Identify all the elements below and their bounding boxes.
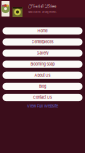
button[interactable]: Blog bbox=[2, 83, 82, 90]
staticText: Florals & Blooms bbox=[28, 4, 56, 9]
button[interactable]: Blooming Soap bbox=[2, 61, 82, 68]
staticText: View Full Website bbox=[27, 104, 58, 108]
button[interactable]: View Full Website bbox=[0, 101, 85, 111]
staticText: handcrafted arrangements bbox=[28, 10, 56, 14]
button[interactable]: Gallery bbox=[2, 49, 82, 57]
staticText: Blooming Soap bbox=[30, 62, 54, 66]
button[interactable]: Home bbox=[2, 27, 82, 34]
staticText: About Us bbox=[34, 73, 50, 77]
staticText: Centerpieces bbox=[31, 40, 53, 44]
staticText: Home bbox=[37, 29, 47, 33]
button[interactable]: About Us bbox=[2, 72, 82, 79]
button[interactable]: Contact Us bbox=[2, 94, 82, 101]
staticText: Blog bbox=[39, 84, 46, 89]
staticText: Contact Us bbox=[33, 95, 52, 100]
button[interactable]: Centerpieces bbox=[2, 38, 82, 46]
staticText: Gallery bbox=[36, 51, 48, 55]
